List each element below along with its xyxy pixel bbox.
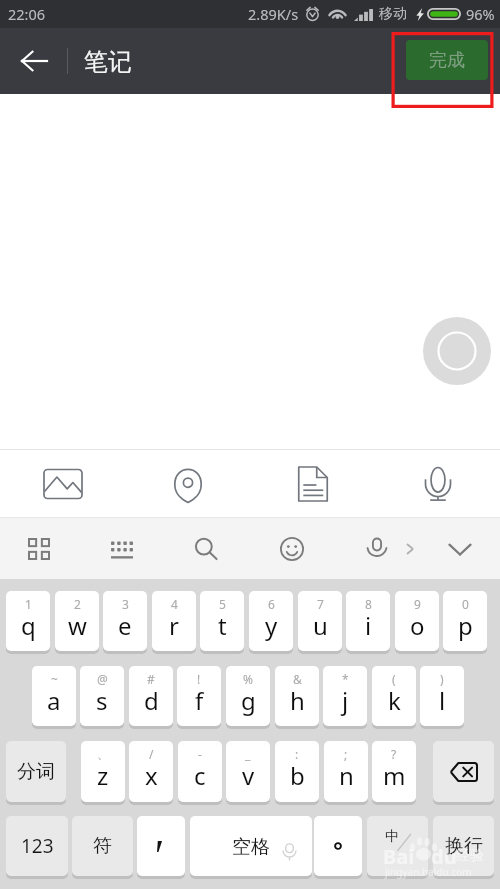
staticText: j <box>342 684 349 717</box>
staticText: 完成 <box>429 49 465 72</box>
button[interactable]: ; <box>324 741 368 802</box>
button[interactable]: 9 <box>395 591 439 651</box>
staticText: 符 <box>93 834 112 858</box>
staticText: v <box>242 759 255 792</box>
staticText: z <box>97 759 109 792</box>
staticText: 2.89K/s <box>248 4 299 24</box>
staticText: a <box>47 684 61 717</box>
button[interactable]: 123 <box>6 816 68 876</box>
button[interactable]: 5 <box>200 591 244 651</box>
button[interactable]: Apps <box>21 518 57 579</box>
staticText: r <box>169 609 179 642</box>
staticText: / <box>149 746 154 762</box>
staticText: 1 <box>25 596 32 612</box>
button[interactable]: Insert image <box>33 450 93 517</box>
button[interactable]: Voice record <box>423 317 491 385</box>
button[interactable]: @ <box>80 666 124 726</box>
button[interactable]: Emoji <box>274 518 310 579</box>
button[interactable]: - <box>178 741 222 802</box>
staticText: 换行 <box>445 834 483 858</box>
button[interactable]: # <box>129 666 173 726</box>
button[interactable]: 、 <box>81 741 125 802</box>
button[interactable]: ! <box>177 666 221 726</box>
staticText: 22:06 <box>8 4 46 24</box>
staticText: Bai <box>383 843 415 870</box>
button[interactable] <box>314 816 362 876</box>
staticText: - <box>198 746 202 762</box>
staticText: 笔记 <box>84 47 132 77</box>
staticText: t <box>218 609 227 642</box>
button[interactable]: 7 <box>298 591 342 651</box>
staticText: # <box>147 671 155 687</box>
staticText: q <box>21 609 36 642</box>
button[interactable]: & <box>275 666 319 726</box>
staticText: x <box>145 759 158 792</box>
staticText: o <box>410 609 425 642</box>
staticText: 6 <box>268 596 275 612</box>
button[interactable]: 分词 <box>6 741 66 802</box>
button[interactable]: 符 <box>72 816 133 876</box>
staticText: 5 <box>219 596 226 612</box>
button[interactable]: Search <box>188 518 224 579</box>
staticText: _ <box>245 746 251 762</box>
button[interactable]: ) <box>420 666 464 726</box>
staticText: c <box>194 759 206 792</box>
button[interactable]: 换行 <box>433 816 494 876</box>
button[interactable]: Voice input <box>408 450 468 517</box>
button[interactable]: Back <box>6 28 62 94</box>
button[interactable]: 空格 <box>190 816 312 876</box>
staticText: 分词 <box>17 760 55 784</box>
button[interactable]: ( <box>372 666 416 726</box>
staticText: 0 <box>462 596 469 612</box>
button[interactable]: Insert document <box>283 450 343 517</box>
staticText: jingyan.baidu.com <box>385 865 472 879</box>
button[interactable]: ? <box>372 741 416 802</box>
button[interactable]: Backspace <box>433 741 494 802</box>
staticText: ! <box>197 671 201 687</box>
staticText: d <box>144 684 159 717</box>
button[interactable]: Keyboard layout <box>104 518 140 579</box>
staticText: ; <box>344 746 348 762</box>
button[interactable]: 中 <box>367 816 428 876</box>
button[interactable] <box>137 816 185 876</box>
staticText: ( <box>392 671 396 687</box>
staticText: 经验 <box>456 847 484 865</box>
button[interactable]: Hide keyboard <box>442 518 478 579</box>
staticText: * <box>342 671 349 687</box>
staticText: 9 <box>414 596 421 612</box>
button[interactable]: 3 <box>103 591 147 651</box>
staticText: 、 <box>97 746 109 761</box>
button[interactable]: Voice input <box>359 518 395 579</box>
staticText: 7 <box>317 596 324 612</box>
button[interactable]: / <box>129 741 173 802</box>
staticText: ? <box>391 746 397 762</box>
staticText: 96% <box>466 4 495 24</box>
button[interactable]: 8 <box>346 591 390 651</box>
button[interactable]: 完成 <box>406 40 488 80</box>
button[interactable]: 6 <box>249 591 293 651</box>
button[interactable]: 4 <box>152 591 196 651</box>
staticText: : <box>295 746 299 762</box>
button[interactable]: % <box>226 666 270 726</box>
button[interactable]: Insert location <box>158 450 218 517</box>
staticText: 4 <box>171 596 178 612</box>
button[interactable]: _ <box>226 741 270 802</box>
staticText: i <box>365 609 372 642</box>
button[interactable]: : <box>275 741 319 802</box>
button[interactable]: 0 <box>443 591 487 651</box>
staticText: & <box>293 671 302 687</box>
staticText: b <box>290 759 305 792</box>
button[interactable]: 1 <box>6 591 50 651</box>
staticText: k <box>388 684 401 717</box>
staticText: 8 <box>365 596 372 612</box>
staticText: 中 <box>385 828 399 846</box>
staticText: du <box>431 843 457 870</box>
staticText: @ <box>97 671 108 687</box>
button[interactable]: 2 <box>55 591 99 651</box>
button[interactable]: ~ <box>32 666 76 726</box>
staticText: 123 <box>21 833 54 859</box>
button[interactable]: * <box>323 666 367 726</box>
staticText: 2 <box>74 596 81 612</box>
staticText: l <box>439 684 446 717</box>
staticText: w <box>68 609 87 642</box>
